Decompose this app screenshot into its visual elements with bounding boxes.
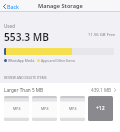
button[interactable]: MP4 bbox=[32, 96, 57, 121]
staticText: 11.56 GB Free bbox=[88, 32, 116, 38]
staticText: REVIEW AND DELETE ITEMS bbox=[4, 75, 47, 79]
staticText: MP4 bbox=[13, 106, 21, 111]
staticText: Back bbox=[7, 3, 19, 10]
staticText: MP4 bbox=[41, 106, 49, 111]
staticText: 439.1 MB bbox=[91, 87, 112, 93]
button[interactable]: MP4 bbox=[4, 96, 29, 121]
staticText: Manage Storage bbox=[38, 2, 83, 10]
button[interactable]: MP4 bbox=[60, 96, 85, 121]
staticText: 553.3 MB bbox=[4, 30, 49, 44]
staticText: Larger Than 5 MB bbox=[4, 87, 44, 93]
staticText: Apps and Other Items bbox=[41, 58, 76, 62]
staticText: +12 bbox=[96, 105, 105, 112]
staticText: Used bbox=[4, 23, 15, 29]
button[interactable]: +12 bbox=[88, 96, 113, 121]
button[interactable]: Larger Than 5 MB bbox=[0, 83, 120, 96]
button[interactable]: Back bbox=[0, 0, 22, 12]
staticText: WhatsApp Media bbox=[8, 58, 35, 62]
staticText: MP4 bbox=[69, 106, 77, 111]
